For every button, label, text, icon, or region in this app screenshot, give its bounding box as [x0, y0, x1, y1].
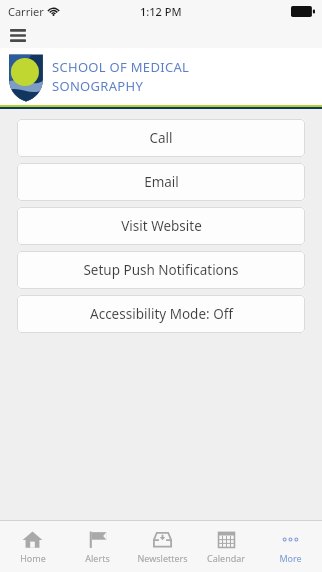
button[interactable]: Newsletters [130, 521, 194, 572]
button[interactable]: Visit Website [17, 207, 305, 245]
button[interactable]: Email [17, 163, 305, 201]
staticText: Home [20, 552, 46, 564]
staticText: SONOGRAPHY [52, 77, 144, 95]
staticText: SCHOOL OF MEDICAL [52, 58, 190, 76]
staticText: Newsletters [137, 552, 188, 564]
button[interactable]: Home [0, 521, 65, 572]
staticText: Calendar [207, 552, 245, 564]
button[interactable]: Calendar [194, 521, 258, 572]
button[interactable]: Setup Push Notifications [17, 251, 305, 289]
button[interactable]: Alerts [65, 521, 130, 572]
staticText: 1:12 PM [140, 4, 182, 19]
staticText: Visit Website [121, 217, 202, 235]
staticText: Setup Push Notifications [83, 261, 239, 279]
button[interactable]: Menu [5, 22, 31, 48]
staticText: More [279, 552, 302, 564]
staticText: Email [144, 173, 179, 191]
button[interactable]: Accessibility Mode: Off [17, 295, 305, 333]
staticText: Call [149, 129, 173, 147]
staticText: Accessibility Mode: Off [90, 305, 233, 323]
button[interactable]: Call [17, 119, 305, 157]
staticText: Alerts [85, 552, 110, 564]
staticText: Carrier [8, 4, 44, 19]
button[interactable]: More [258, 521, 322, 572]
